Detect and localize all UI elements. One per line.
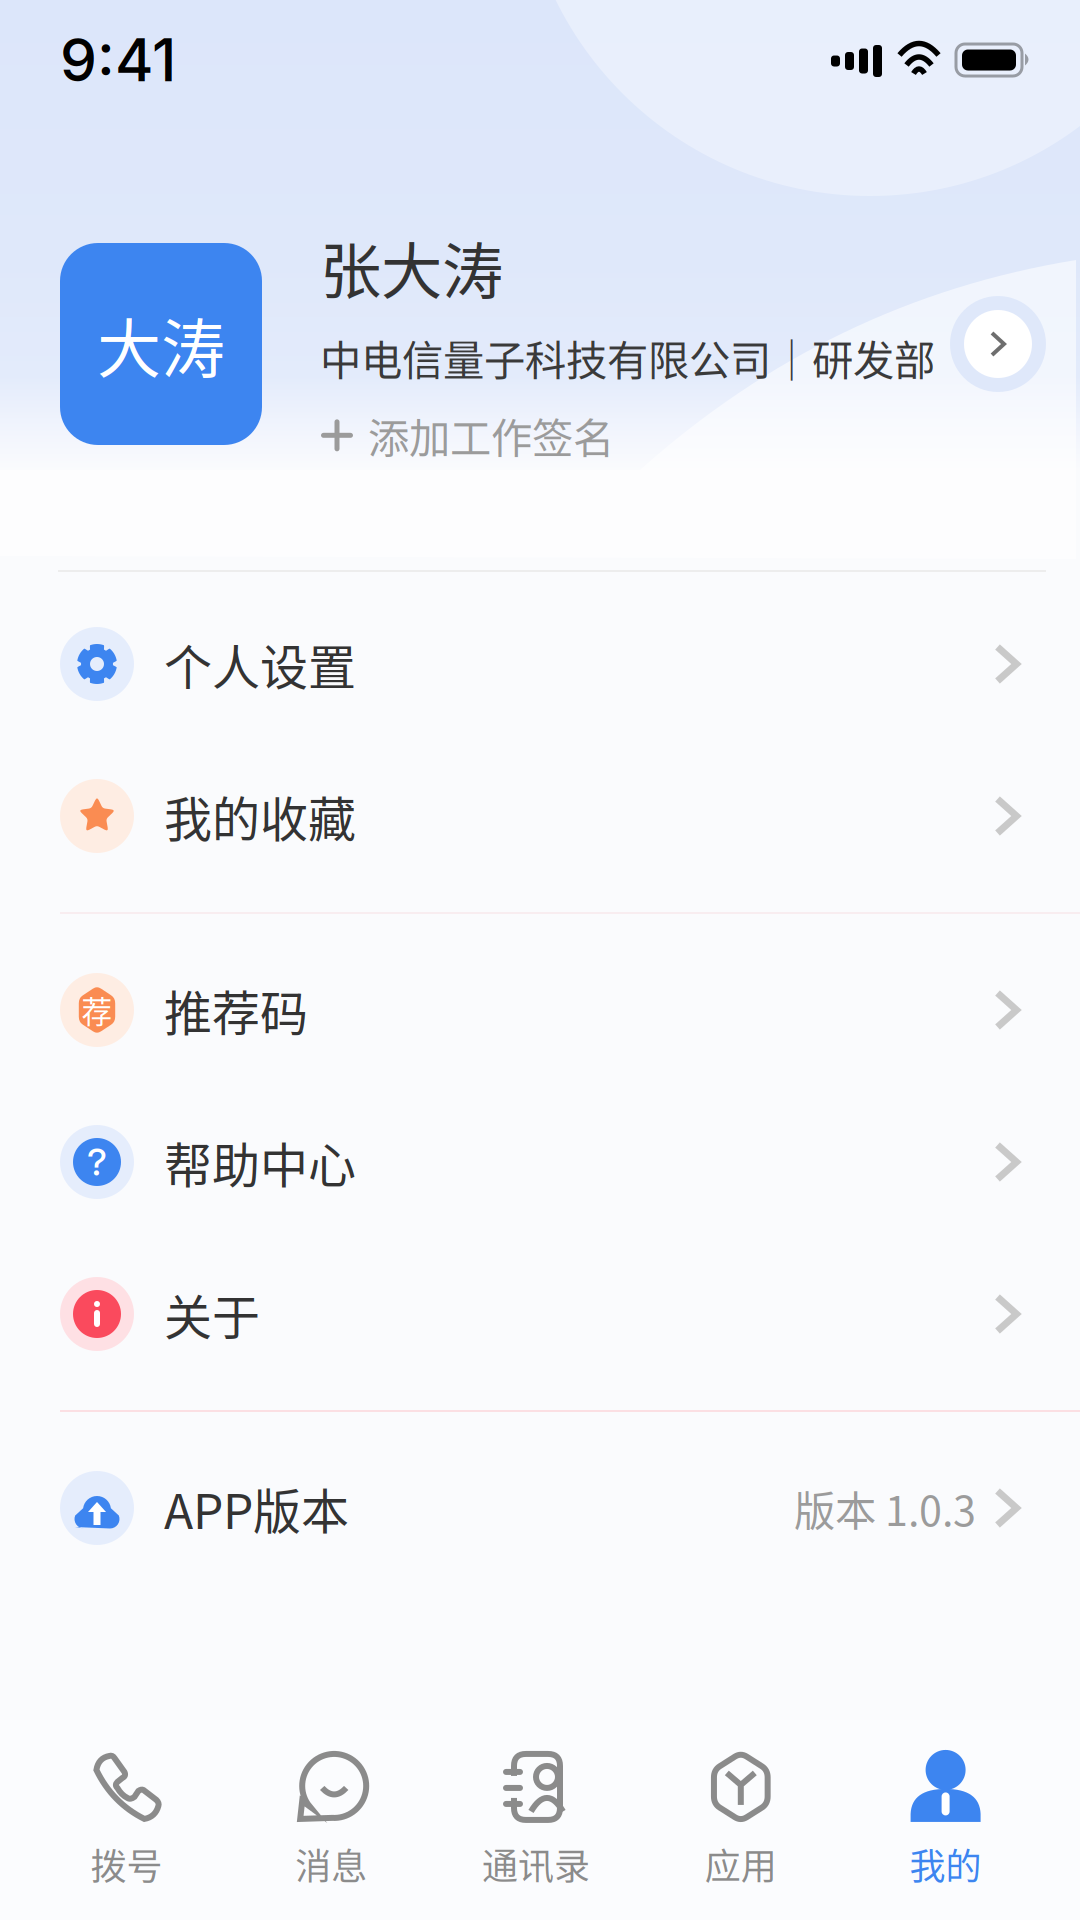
staticText: 版本 1.0.3 (794, 1478, 976, 1538)
staticText: APP版本 (164, 1473, 349, 1543)
button[interactable]: View profile (946, 292, 1050, 396)
button[interactable]: 拨号 (24, 1725, 229, 1915)
staticText: 拨号 (90, 1838, 162, 1890)
button[interactable]: 应用 (638, 1725, 843, 1915)
staticText: 我的收藏 (164, 781, 356, 851)
staticText: 9:41 (60, 24, 176, 95)
staticText: 个人设置 (164, 629, 356, 699)
button[interactable]: 通讯录 (434, 1725, 638, 1915)
button[interactable]: ? (0, 1086, 1080, 1238)
button[interactable]: 我的收藏 (0, 740, 1080, 892)
staticText: 添加工作签名 (368, 405, 614, 465)
staticText: 荐 (81, 988, 112, 1032)
staticText: 大涛 (97, 298, 225, 390)
staticText: 我的 (910, 1838, 982, 1890)
button[interactable]: 关于 (0, 1238, 1080, 1390)
button[interactable]: 个人设置 (0, 588, 1080, 740)
button[interactable]: 我的 (843, 1725, 1048, 1915)
staticText: 帮助中心 (164, 1127, 356, 1197)
staticText: 应用 (705, 1838, 777, 1890)
staticText: 关于 (164, 1279, 260, 1349)
button[interactable]: 荐 (0, 934, 1080, 1086)
staticText: 通讯录 (482, 1838, 590, 1890)
staticText: 推荐码 (164, 975, 308, 1045)
staticText: 消息 (295, 1838, 367, 1890)
button[interactable]: 消息 (229, 1725, 434, 1915)
staticText: 中电信量子科技有限公司｜研发部 (320, 328, 935, 387)
button[interactable]: APP版本 (0, 1432, 1080, 1584)
staticText: ? (87, 1139, 107, 1185)
staticText: 张大涛 (320, 223, 503, 311)
